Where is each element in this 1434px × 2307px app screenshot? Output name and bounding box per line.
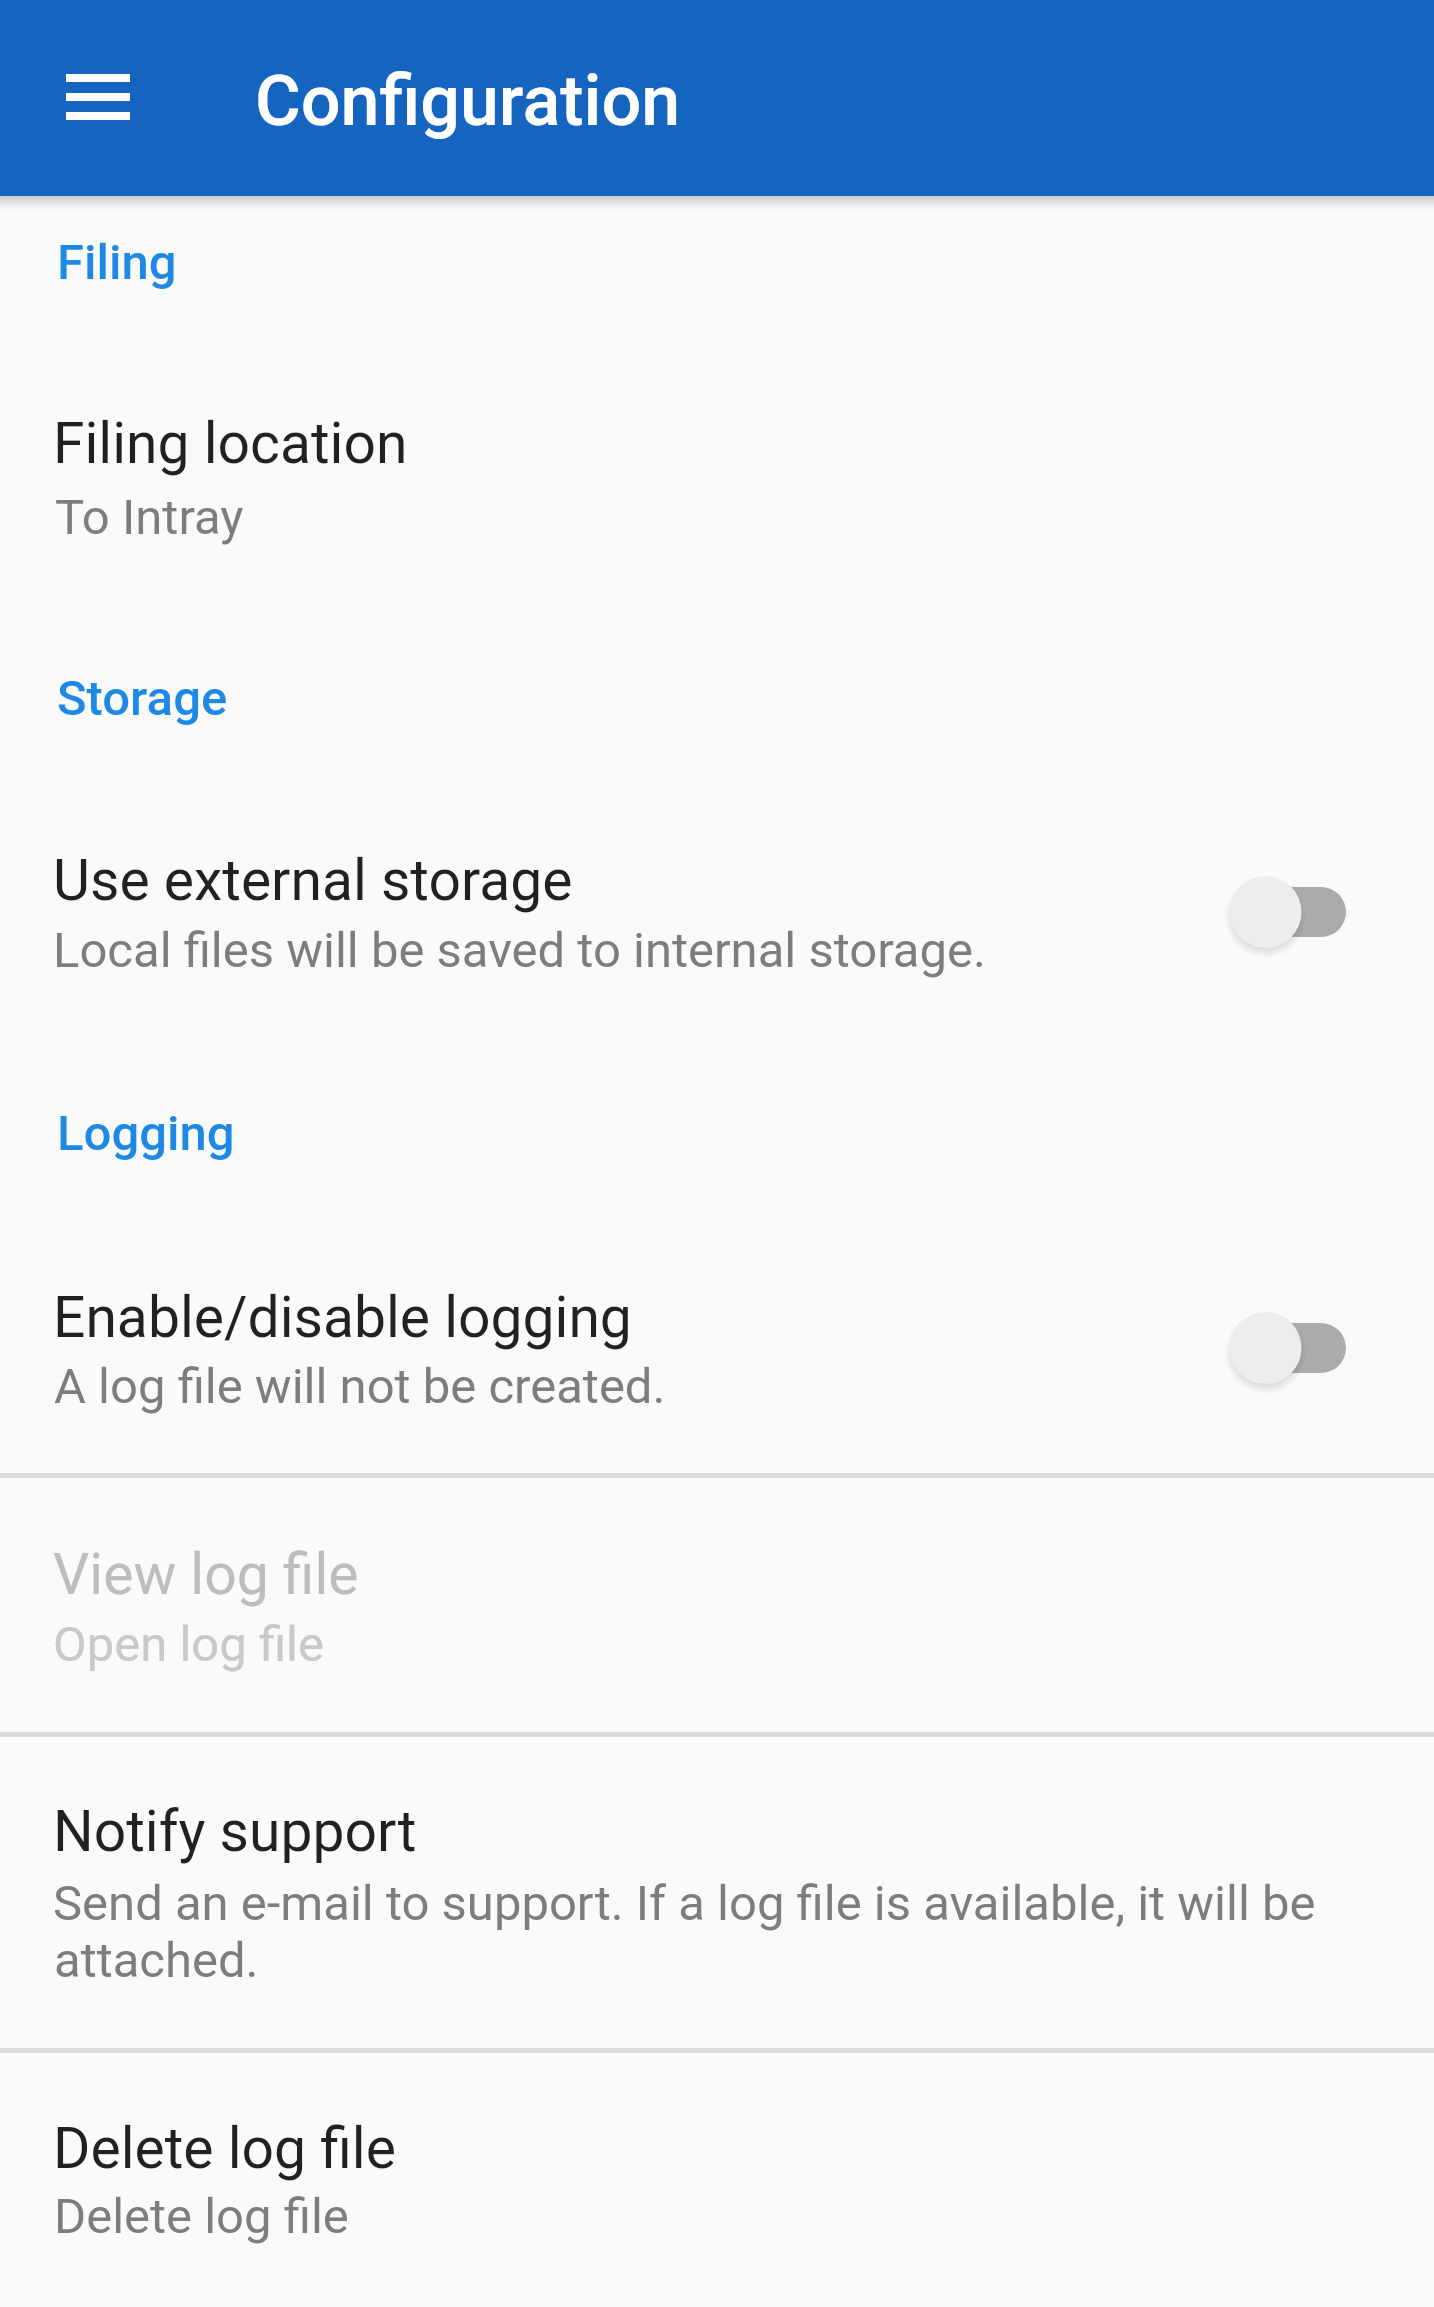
staticText: Configuration: [255, 60, 681, 142]
staticText: Local files will be saved to internal st…: [53, 922, 986, 979]
staticText: Delete log file: [53, 2115, 396, 2182]
staticText: Use external storage: [53, 847, 573, 914]
staticText: To Intray: [55, 489, 244, 546]
staticText: Notify support: [53, 1798, 417, 1865]
staticText: A log file will not be created.: [54, 1358, 666, 1415]
staticText: Open log file: [53, 1616, 325, 1673]
staticText: Filing location: [53, 410, 408, 477]
staticText: Filing: [57, 234, 177, 291]
staticText: Storage: [57, 670, 228, 727]
staticText: attached.: [54, 1932, 259, 1989]
staticText: Delete log file: [54, 2188, 349, 2245]
staticText: View log file: [53, 1541, 359, 1608]
staticText: Enable/disable logging: [53, 1284, 632, 1351]
staticText: Logging: [57, 1105, 235, 1162]
staticText: Send an e-mail to support. If a log file…: [53, 1875, 1316, 1932]
